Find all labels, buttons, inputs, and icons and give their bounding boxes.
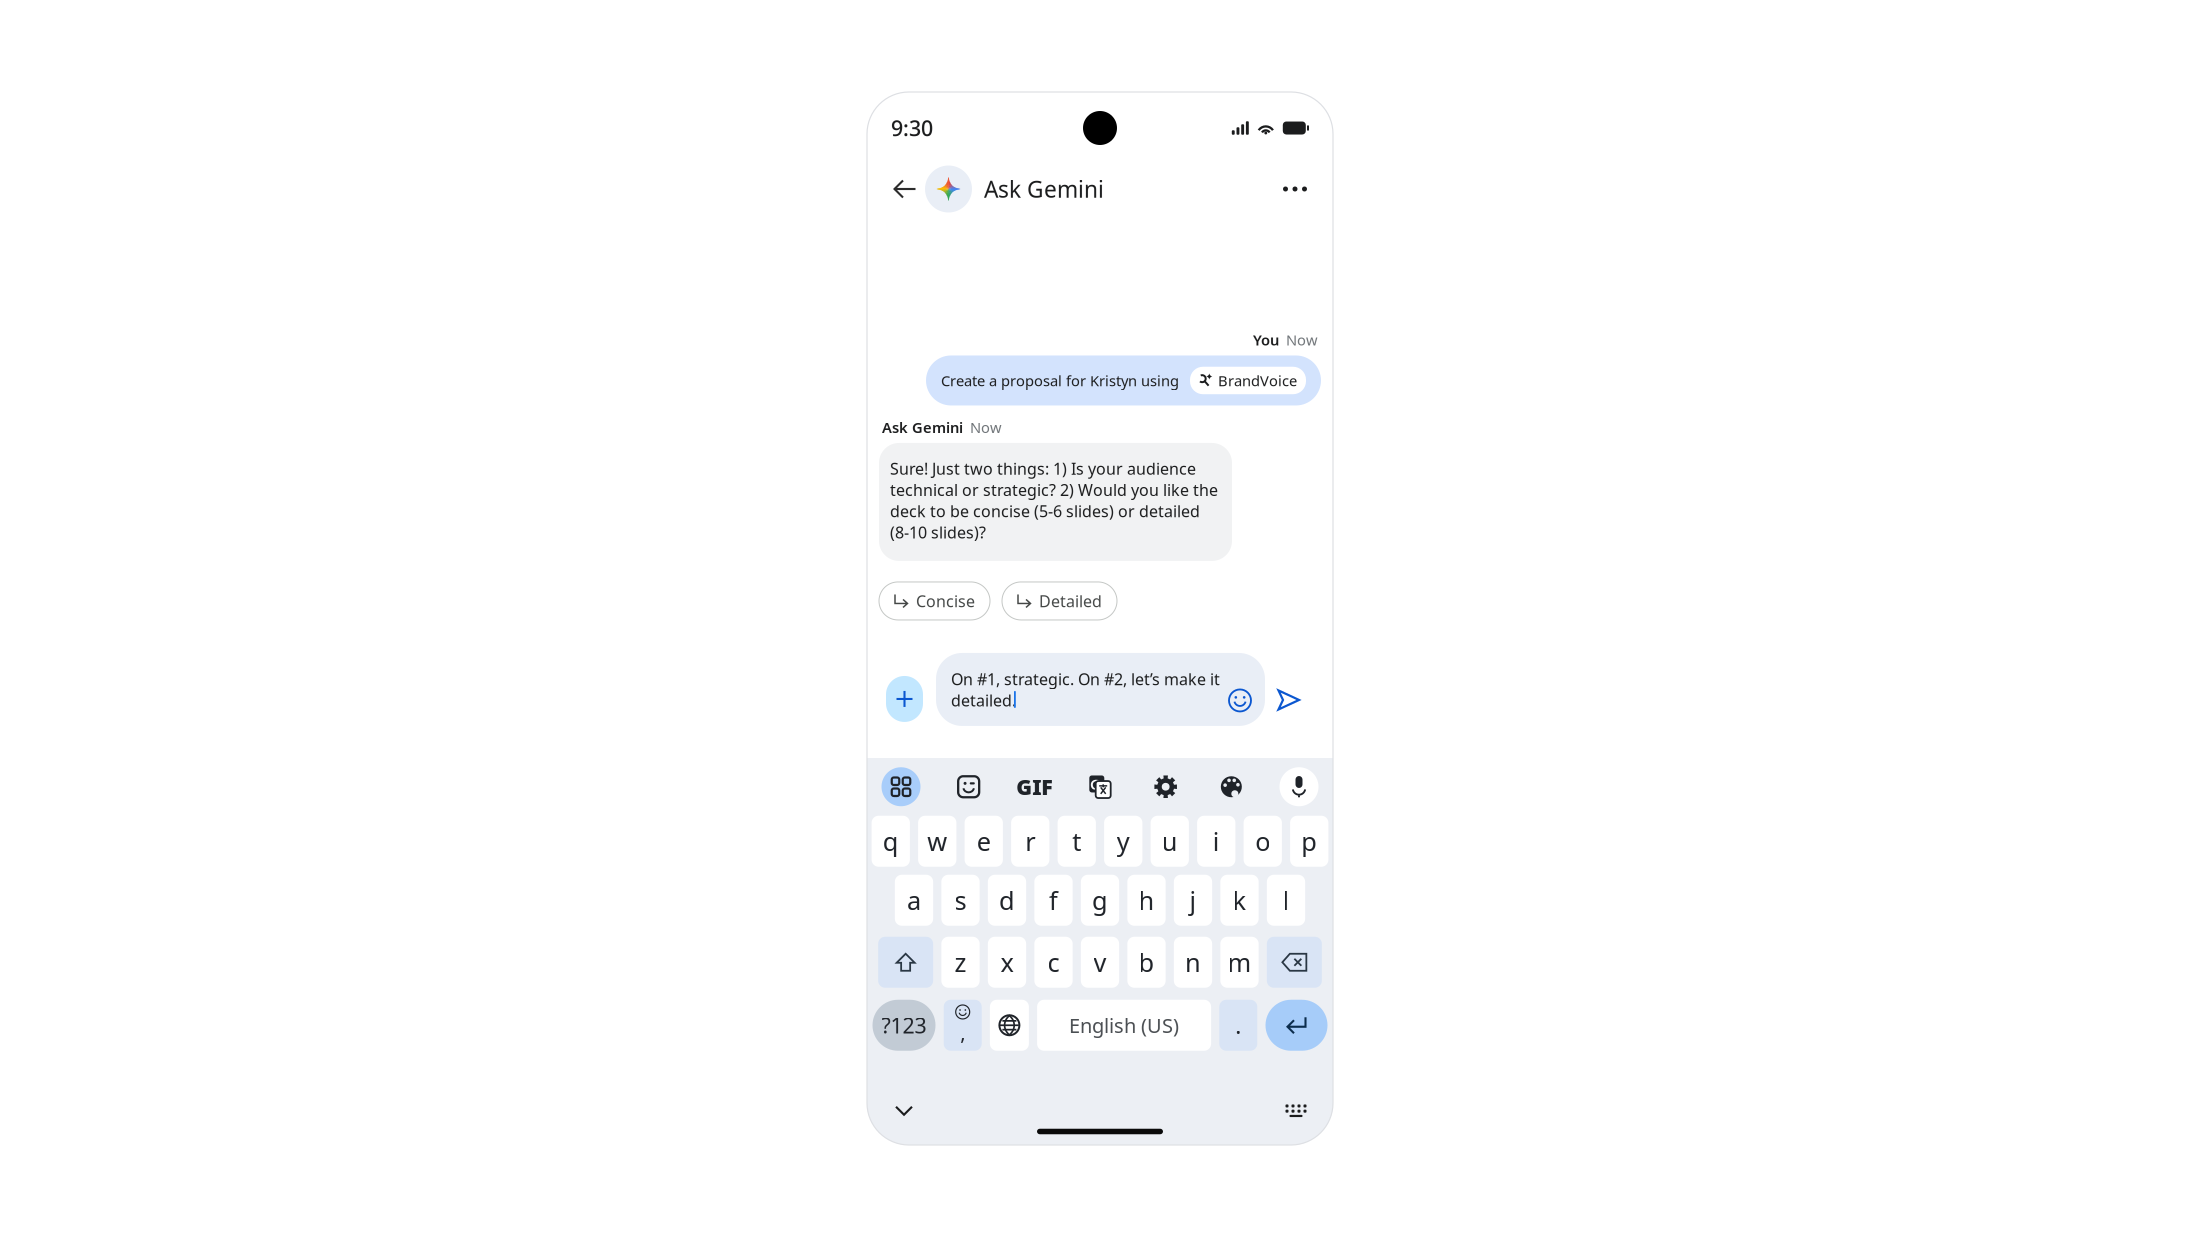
staticText: On #1, strategic. On #2, let’s make it d… xyxy=(951,668,1220,711)
button[interactable]: r xyxy=(1011,816,1049,867)
button[interactable]: Backspace xyxy=(1267,937,1322,988)
staticText: y xyxy=(1117,824,1130,858)
staticText: , xyxy=(960,1019,965,1046)
button[interactable]: q xyxy=(872,816,910,867)
staticText: Now xyxy=(970,417,1002,437)
staticText: z xyxy=(954,945,966,979)
button[interactable]: Switch keyboard xyxy=(1275,1093,1317,1129)
staticText: l xyxy=(1282,883,1289,917)
button[interactable]: l xyxy=(1267,875,1305,926)
staticText: Concise xyxy=(916,590,975,611)
button[interactable]: Translate xyxy=(1078,765,1122,809)
staticText: q xyxy=(883,824,899,858)
staticText: j xyxy=(1189,883,1196,917)
button[interactable]: Shift xyxy=(878,937,933,988)
button[interactable]: Concise xyxy=(879,582,990,620)
button[interactable]: b xyxy=(1127,937,1166,988)
staticText: GIF xyxy=(1016,773,1052,801)
staticText: Sure! Just two things: 1) Is your audien… xyxy=(890,458,1218,543)
button[interactable]: j xyxy=(1174,875,1212,926)
button[interactable]: Hide keyboard xyxy=(883,1093,925,1129)
button[interactable]: ?123 xyxy=(872,1000,935,1051)
button[interactable]: Enter xyxy=(1265,1000,1327,1051)
button[interactable]: g xyxy=(1081,875,1119,926)
staticText: f xyxy=(1049,883,1058,917)
staticText: x xyxy=(1000,945,1013,979)
button[interactable]: n xyxy=(1174,937,1212,988)
staticText: d xyxy=(999,883,1015,917)
button[interactable]: GIF xyxy=(1012,765,1056,809)
button[interactable]: a xyxy=(895,875,933,926)
button[interactable]: Detailed xyxy=(1002,582,1117,620)
staticText: i xyxy=(1213,824,1220,858)
button[interactable]: e xyxy=(965,816,1003,867)
staticText: t xyxy=(1072,824,1081,858)
button[interactable]: c xyxy=(1034,937,1073,988)
button[interactable]: Stickers xyxy=(947,765,991,809)
staticText: ?123 xyxy=(881,1011,926,1039)
button[interactable]: . xyxy=(1219,1000,1257,1051)
button[interactable]: k xyxy=(1220,875,1259,926)
button[interactable]: Emoji xyxy=(944,1000,982,1051)
staticText: w xyxy=(927,824,947,858)
staticText: p xyxy=(1301,824,1317,858)
button[interactable]: t xyxy=(1058,816,1096,867)
button[interactable]: x xyxy=(988,937,1026,988)
button[interactable]: m xyxy=(1220,937,1259,988)
staticText: Ask Gemini xyxy=(984,174,1104,204)
staticText: k xyxy=(1232,883,1246,917)
staticText: Detailed xyxy=(1039,590,1102,611)
button[interactable]: h xyxy=(1127,875,1166,926)
staticText: u xyxy=(1162,824,1178,858)
button[interactable]: Back xyxy=(885,166,925,212)
staticText: English (US) xyxy=(1069,1012,1179,1039)
button[interactable]: w xyxy=(918,816,956,867)
button[interactable]: English (US) xyxy=(1037,1000,1211,1051)
button[interactable]: p xyxy=(1290,816,1328,867)
button[interactable]: o xyxy=(1244,816,1282,867)
button[interactable]: Change language xyxy=(990,1000,1029,1051)
staticText: BrandVoice xyxy=(1218,371,1297,390)
staticText: G xyxy=(1090,774,1101,794)
staticText: b xyxy=(1138,945,1154,979)
button[interactable]: Apps xyxy=(877,765,925,809)
button[interactable]: i xyxy=(1197,816,1235,867)
button[interactable]: z xyxy=(941,937,980,988)
staticText: Ask Gemini xyxy=(882,417,963,437)
button[interactable]: Send xyxy=(1277,689,1300,726)
staticText: h xyxy=(1138,883,1154,917)
staticText: g xyxy=(1092,883,1108,917)
staticText: Now xyxy=(1286,330,1318,349)
staticText: c xyxy=(1047,945,1059,979)
staticText: 9:30 xyxy=(891,114,933,142)
button[interactable]: s xyxy=(941,875,980,926)
button[interactable]: Add attachment xyxy=(886,676,936,726)
button[interactable]: More options xyxy=(1275,166,1315,212)
button[interactable]: Settings xyxy=(1144,765,1188,809)
button[interactable]: Theme xyxy=(1209,765,1253,809)
staticText: e xyxy=(977,824,991,858)
staticText: o xyxy=(1255,824,1270,858)
staticText: a xyxy=(907,883,921,917)
staticText: s xyxy=(954,883,966,917)
staticText: You xyxy=(1253,330,1279,349)
button[interactable]: d xyxy=(988,875,1026,926)
staticText: v xyxy=(1093,945,1106,979)
staticText: r xyxy=(1025,824,1035,858)
staticText: Create a proposal for Kristyn using xyxy=(941,371,1179,390)
button[interactable]: y xyxy=(1104,816,1142,867)
button[interactable]: u xyxy=(1151,816,1189,867)
button[interactable]: Ask Gemini xyxy=(925,165,1104,212)
button[interactable]: v xyxy=(1081,937,1119,988)
button[interactable]: f xyxy=(1034,875,1073,926)
staticText: m xyxy=(1227,945,1251,979)
staticText: n xyxy=(1185,945,1201,979)
staticText: . xyxy=(1235,1010,1241,1040)
button[interactable]: Voice input xyxy=(1275,765,1323,809)
